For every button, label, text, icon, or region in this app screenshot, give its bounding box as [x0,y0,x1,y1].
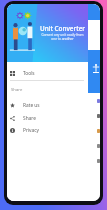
staticText: Tools [23,70,35,77]
button[interactable]: Share [7,112,88,125]
button[interactable]: Tools [7,67,88,80]
staticText: Privacy [23,127,39,134]
staticText: Rate us [23,102,40,109]
staticText: Share [23,115,36,122]
button[interactable]: Rate us [7,99,88,112]
button[interactable]: Privacy [7,124,88,137]
other: Weight [91,64,100,74]
staticText: Unit Converter [37,24,88,33]
staticText: Share [11,87,23,93]
staticText: Convert any unit easily from one to anot… [37,33,88,41]
